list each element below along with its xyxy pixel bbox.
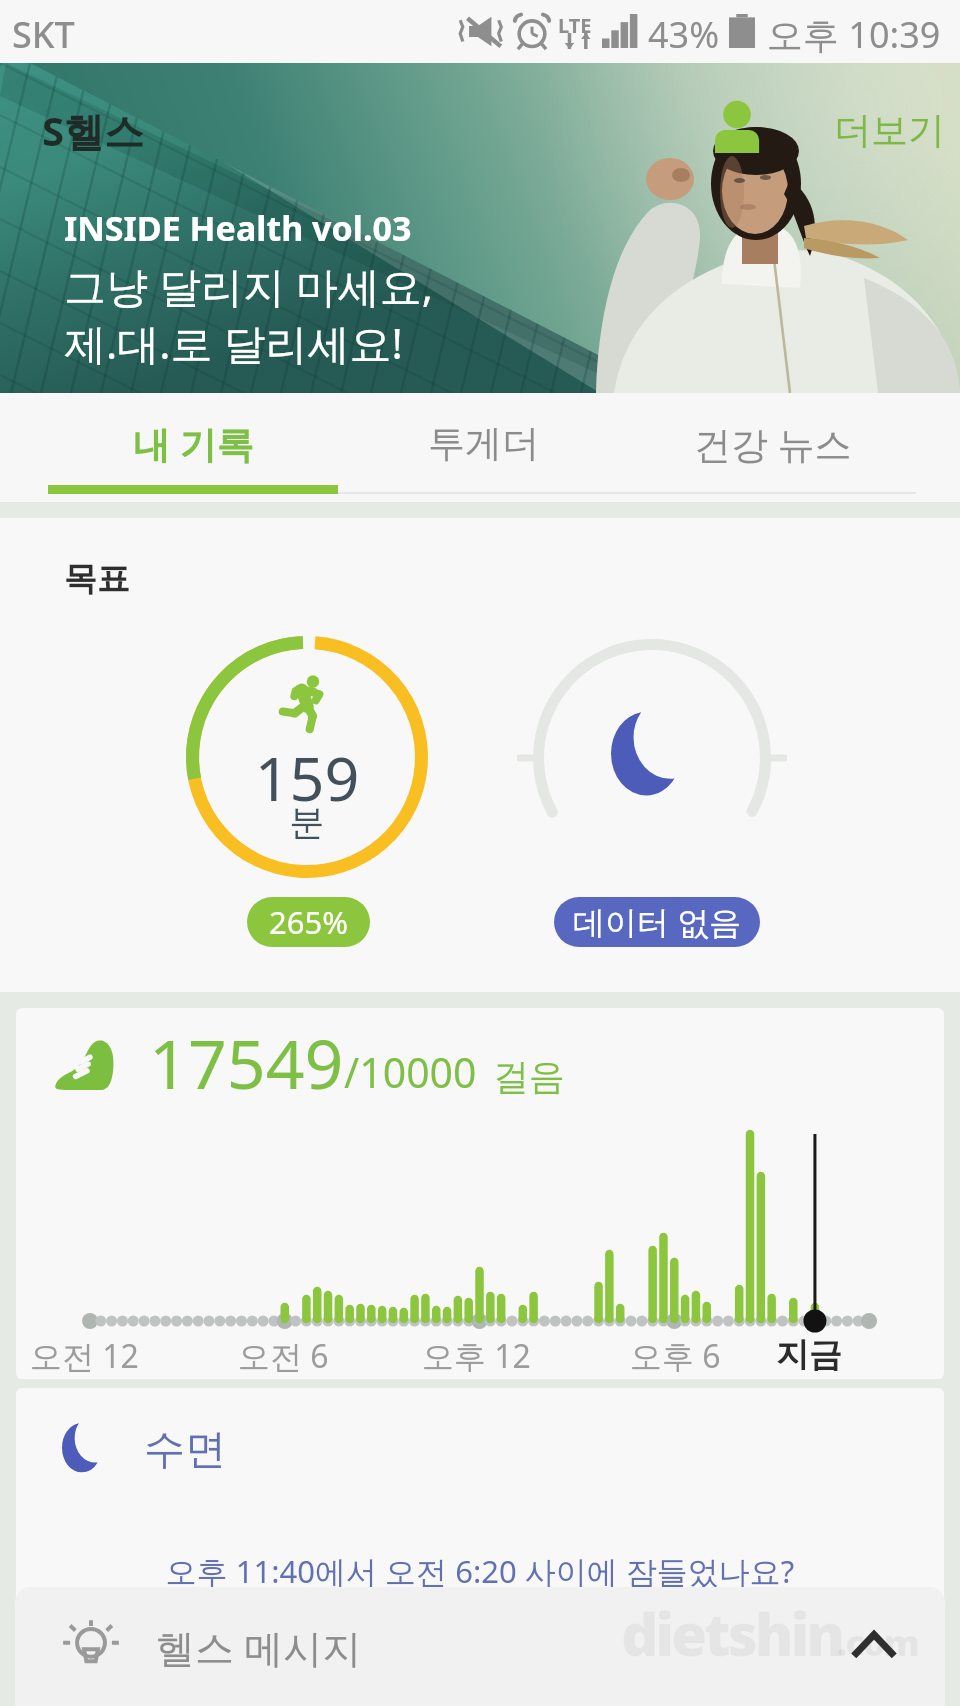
staticText: 내 기록: [133, 418, 254, 469]
staticText: LTE: [558, 12, 592, 39]
button[interactable]: 투게더: [338, 393, 628, 494]
staticText: 분: [239, 800, 375, 844]
staticText: 더보기: [834, 107, 945, 154]
staticText: 걸음: [493, 1054, 565, 1099]
button[interactable]: 데이터 없음: [554, 897, 760, 947]
staticText: 수면: [144, 1424, 226, 1476]
staticText: 오전 6: [238, 1334, 329, 1378]
staticText: 오후 11:40에서 오전 6:20 사이에 잠들었나요?: [16, 1550, 944, 1592]
staticText: .com: [837, 1618, 918, 1667]
staticText: 건강 뉴스: [694, 418, 852, 469]
staticText: 265%: [269, 901, 348, 943]
staticText: 헬스 메시지: [156, 1620, 362, 1673]
staticText: 투게더: [428, 420, 539, 467]
staticText: 159: [239, 736, 375, 819]
staticText: 그냥 달리지 마세요,: [64, 257, 434, 314]
button[interactable]: 건강 뉴스: [628, 393, 918, 494]
staticText: /10000: [344, 1044, 477, 1100]
staticText: 오후 10:39: [767, 10, 941, 59]
staticText: S헬스: [42, 103, 145, 158]
staticText: 오후 6: [630, 1334, 721, 1378]
button[interactable]: dietshin: [15, 1587, 945, 1706]
other: Expand health messages: [851, 1632, 897, 1658]
button[interactable]: 17549: [16, 1008, 944, 1379]
button[interactable]: 265%: [247, 897, 370, 947]
staticText: 데이터 없음: [573, 900, 742, 944]
staticText: 43%: [648, 10, 720, 59]
staticText: 지금: [776, 1334, 842, 1376]
staticText: 제.대.로 달리세요!: [64, 314, 403, 371]
staticText: INSIDE Health vol.03: [64, 205, 412, 251]
staticText: 오후 12: [422, 1334, 531, 1378]
staticText: 목표: [64, 558, 130, 600]
button[interactable]: 수면: [16, 1388, 944, 1706]
staticText: 17549: [149, 1016, 344, 1109]
staticText: dietshin: [619, 1592, 841, 1671]
button[interactable]: 더보기: [834, 107, 945, 154]
button[interactable]: 내 기록: [48, 393, 338, 494]
staticText: SKT: [12, 10, 75, 59]
staticText: 오전 12: [30, 1334, 139, 1378]
staticText: dietshin: [621, 1594, 843, 1673]
